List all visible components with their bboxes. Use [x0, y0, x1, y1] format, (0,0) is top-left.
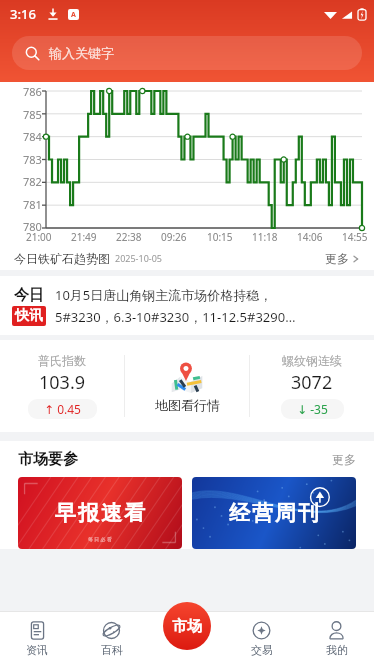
staticText: 我的 [326, 643, 348, 657]
staticText: 786 [23, 84, 42, 99]
button[interactable]: 交易 [224, 611, 299, 666]
staticText: 781 [23, 197, 42, 212]
staticText: 早报速看 [54, 500, 146, 526]
staticText: 21:49 [71, 230, 97, 244]
button[interactable]: 百科 [74, 611, 149, 666]
button[interactable]: 早报速看 [18, 477, 182, 549]
staticText: 785 [23, 107, 42, 122]
staticText: ↑ 0.45 [44, 401, 81, 417]
staticText: 5#3230，6.3-10#3230，11-12.5#3290… [55, 308, 296, 326]
staticText: 今日铁矿石趋势图 [14, 251, 110, 266]
button[interactable]: 市场 [163, 602, 211, 650]
staticText: 14:55 [342, 230, 368, 244]
staticText: 783 [23, 152, 42, 167]
staticText: 10月5日唐山角钢主流市场价格持稳， [55, 286, 273, 304]
staticText: 21:00 [26, 230, 52, 244]
button[interactable]: 螺纹钢连续 [250, 340, 374, 432]
staticText: 2025-10-05 [115, 252, 162, 264]
staticText: 输入关键字 [49, 45, 114, 61]
staticText: 更多 [332, 452, 356, 467]
staticText: 784 [23, 129, 42, 144]
button[interactable]: 今日 [0, 276, 374, 335]
staticText: 经营周刊 [228, 500, 320, 526]
button[interactable]: 输入关键字 [12, 36, 362, 70]
staticText: 11:18 [252, 230, 278, 244]
staticText: ↓ -35 [297, 401, 328, 417]
staticText: 14:06 [297, 230, 323, 244]
staticText: 市场要参 [18, 450, 78, 469]
staticText: 百科 [101, 643, 123, 657]
staticText: A [71, 10, 76, 20]
button[interactable]: 更多 [332, 452, 356, 467]
staticText: 780 [23, 219, 42, 234]
button[interactable]: 地图看行情 [125, 340, 249, 432]
staticText: 09:26 [161, 230, 187, 244]
staticText: 更多 [325, 251, 349, 266]
staticText: 22:38 [116, 230, 142, 244]
button[interactable]: 更多 [325, 251, 360, 266]
button[interactable]: 普氏指数 [0, 340, 124, 432]
staticText: 螺纹钢连续 [282, 353, 342, 368]
button[interactable]: 资讯 [0, 611, 74, 666]
staticText: 782 [23, 174, 42, 189]
button[interactable]: 经营周刊 [192, 477, 356, 549]
staticText: 普氏指数 [38, 353, 86, 368]
staticText: 今日 [14, 286, 44, 305]
staticText: 3:16 [10, 5, 36, 23]
staticText: 3072 [291, 370, 333, 395]
staticText: 资讯 [26, 643, 48, 657]
staticText: 103.9 [39, 370, 86, 395]
staticText: 每 日 必 看 [88, 536, 112, 543]
button[interactable]: 我的 [299, 611, 374, 666]
staticText: 10:15 [207, 230, 233, 244]
staticText: 快讯 [15, 307, 43, 325]
staticText: 地图看行情 [155, 397, 220, 413]
staticText: 市场 [172, 617, 202, 636]
staticText: 交易 [251, 643, 273, 657]
